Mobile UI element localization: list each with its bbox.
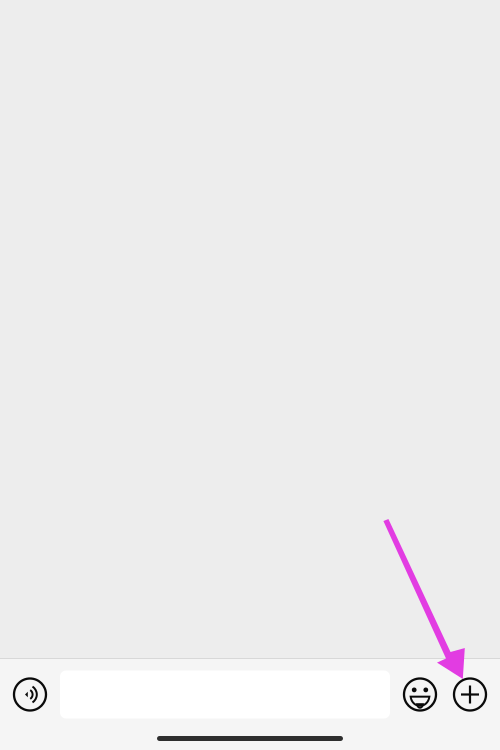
button[interactable]: More [450,659,490,730]
button[interactable]: Emoji [390,659,450,730]
button[interactable]: Voice input [0,659,60,730]
